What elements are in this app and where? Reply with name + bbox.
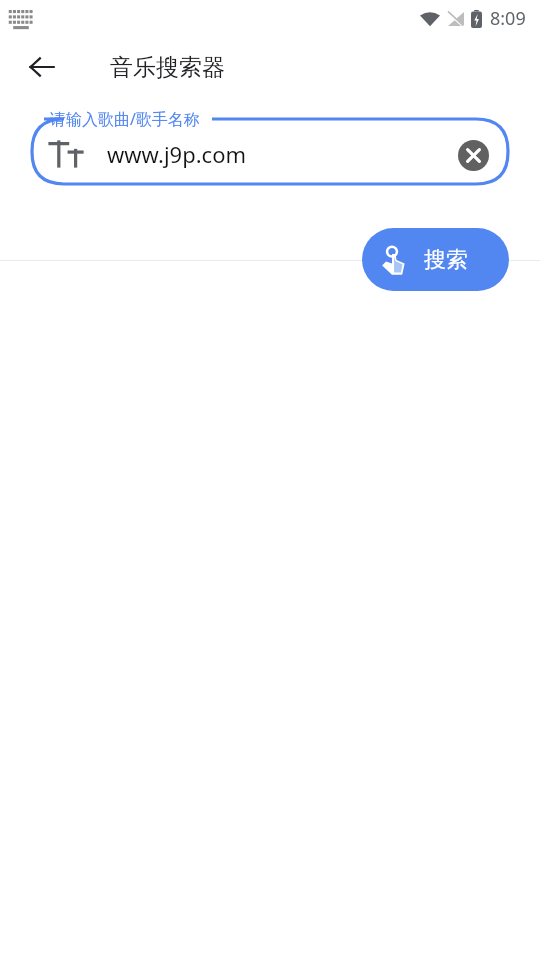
button[interactable]: Clear text: [452, 134, 494, 176]
staticText: 音乐搜索器: [110, 53, 225, 82]
button[interactable]: Back: [18, 43, 66, 91]
staticText: 搜索: [424, 246, 468, 274]
staticText: 请输入歌曲/歌手名称: [50, 108, 200, 130]
staticText: www.j9p.com: [107, 139, 247, 169]
staticText: 8:09: [490, 6, 526, 31]
button[interactable]: 搜索: [362, 228, 509, 291]
